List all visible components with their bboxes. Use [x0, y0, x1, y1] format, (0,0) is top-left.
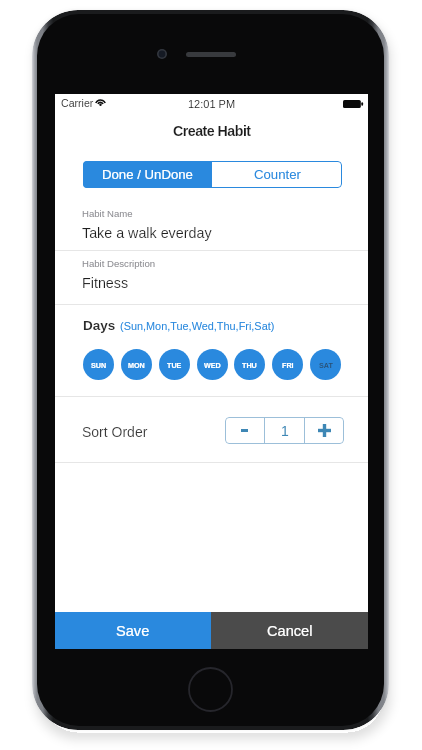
staticText: Take a walk everday	[82, 225, 212, 241]
button[interactable]: SAT	[310, 349, 341, 380]
staticText: THU	[242, 361, 257, 369]
staticText: Save	[116, 623, 150, 639]
button[interactable]: FRI	[272, 349, 303, 380]
staticText: FRI	[282, 361, 294, 369]
staticText: 12:01 PM	[188, 98, 236, 110]
staticText: Days	[83, 318, 116, 333]
button[interactable]: Cancel	[211, 612, 368, 649]
button[interactable]: TUE	[159, 349, 190, 380]
staticText: Done / UnDone	[102, 167, 193, 182]
staticText: WED	[204, 361, 221, 369]
button[interactable]: SUN	[83, 349, 114, 380]
staticText: Habit Name	[82, 208, 133, 219]
button[interactable]: THU	[234, 349, 265, 380]
staticText: Fitness	[82, 275, 129, 291]
staticText: Create Habit	[173, 123, 251, 139]
staticText: SAT	[319, 361, 333, 369]
button[interactable]: Done / UnDone	[83, 161, 212, 188]
button[interactable]: Decrease sort order	[225, 417, 264, 444]
staticText: SUN	[91, 361, 107, 369]
staticText: Sort Order	[82, 424, 148, 440]
button[interactable]: Counter	[212, 161, 342, 188]
button[interactable]: MON	[121, 349, 152, 380]
staticText: 1	[281, 423, 289, 439]
staticText: Carrier	[61, 97, 94, 109]
staticText: Cancel	[267, 623, 313, 639]
staticText: Counter	[254, 167, 301, 182]
staticText: MON	[128, 361, 145, 369]
staticText: (Sun,Mon,Tue,Wed,Thu,Fri,Sat)	[120, 320, 275, 332]
button[interactable]: Save	[55, 612, 211, 649]
staticText: TUE	[167, 361, 182, 369]
button[interactable]: Habit Description	[55, 254, 368, 300]
button[interactable]: WED	[197, 349, 228, 380]
button[interactable]: Increase sort order	[305, 417, 344, 444]
button[interactable]: Habit Name	[55, 204, 368, 250]
staticText: Habit Description	[82, 258, 156, 269]
